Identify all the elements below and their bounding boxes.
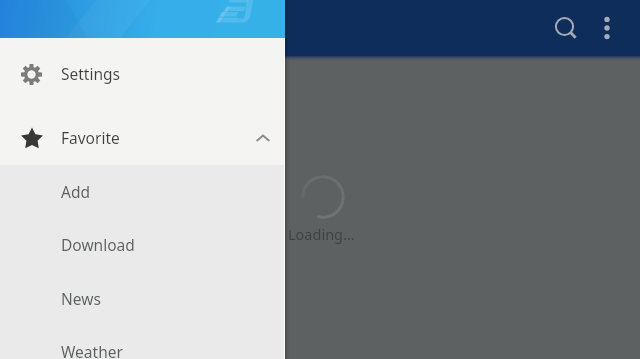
staticText: Download [61, 234, 135, 255]
staticText: Add [61, 181, 90, 202]
button[interactable]: Settings [0, 40, 285, 109]
button[interactable]: News [0, 271, 285, 325]
button[interactable]: Close navigation drawer [290, 0, 640, 359]
staticText: Settings [61, 63, 120, 84]
button[interactable]: Weather [0, 324, 285, 359]
button[interactable]: Add [0, 164, 285, 218]
button[interactable]: Favorite [0, 108, 285, 166]
button[interactable]: Download [0, 217, 285, 271]
staticText: Favorite [61, 127, 120, 148]
staticText: News [61, 288, 101, 309]
button[interactable]: More options [584, 5, 629, 50]
button[interactable]: Search [543, 5, 588, 50]
staticText: Loading... [288, 224, 355, 244]
staticText: Weather [61, 341, 123, 359]
